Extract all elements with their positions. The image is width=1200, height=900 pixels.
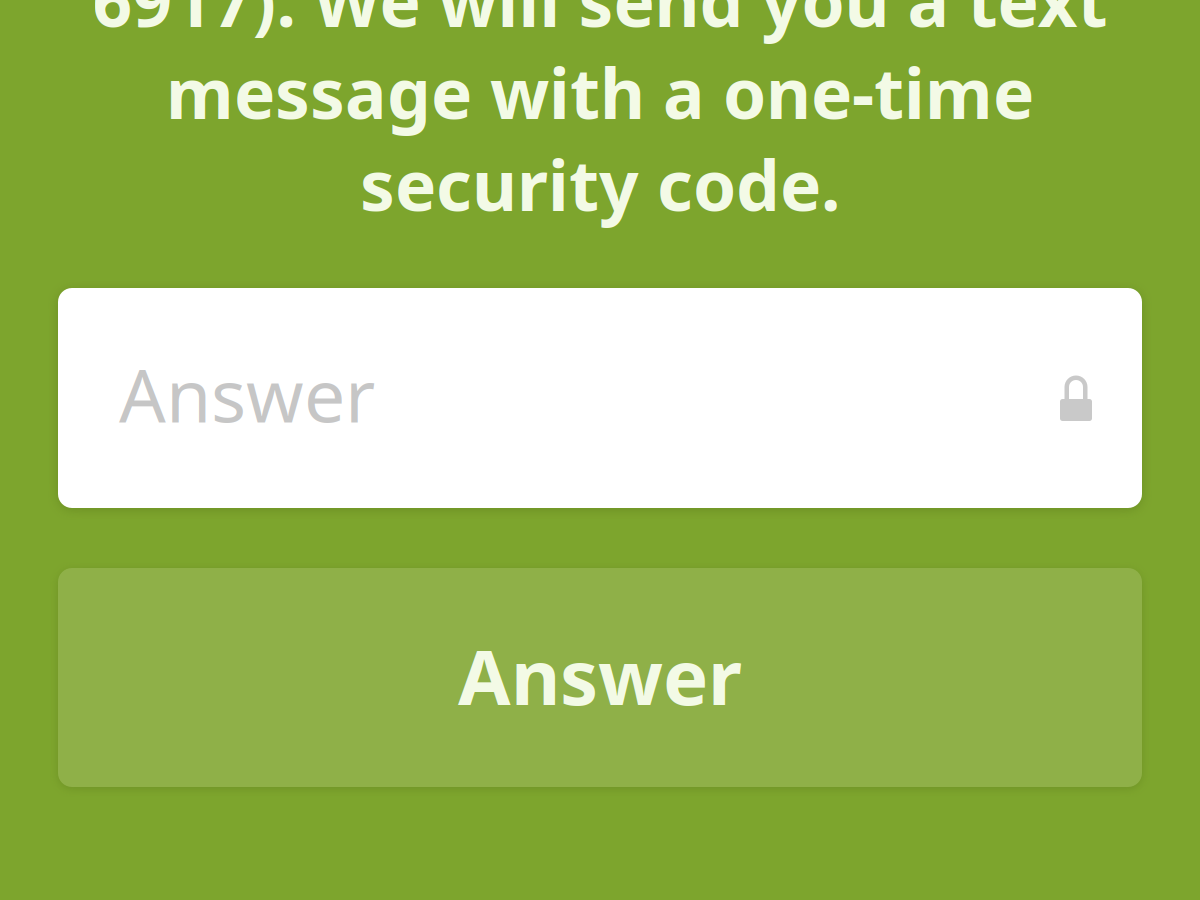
staticText: Answer	[458, 625, 742, 726]
button[interactable]: Answer, secure entry field	[58, 288, 1142, 508]
button[interactable]: Answer	[58, 568, 1142, 787]
staticText: security code.	[360, 138, 840, 230]
staticText: message with a one-time	[166, 46, 1034, 138]
staticText: 6917). We will send you a text	[92, 0, 1107, 46]
staticText: Answer	[119, 345, 375, 443]
